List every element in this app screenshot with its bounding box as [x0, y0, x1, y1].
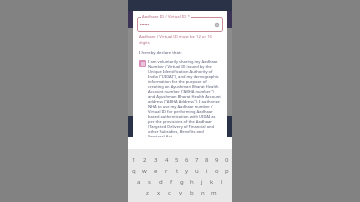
staticText: Aadhaar / Virtual ID must be 12 or 16 di…	[139, 34, 223, 46]
button[interactable]: i	[202, 165, 212, 176]
button[interactable]: e	[150, 165, 161, 176]
button[interactable]: y	[182, 165, 192, 176]
button[interactable]: a	[133, 176, 144, 187]
button[interactable]: Show password	[214, 22, 220, 28]
button[interactable]: o	[212, 165, 222, 176]
button[interactable]: ••••••	[137, 17, 223, 32]
button[interactable]: k	[207, 176, 217, 187]
staticText: o	[215, 167, 219, 175]
staticText: q	[132, 167, 136, 175]
staticText: 7	[195, 156, 199, 164]
button[interactable]: z	[142, 187, 153, 198]
staticText: d	[159, 178, 163, 186]
button[interactable]: r	[161, 165, 172, 176]
button[interactable]: 1	[128, 154, 139, 165]
button[interactable]: 6	[182, 154, 192, 165]
staticText: 0	[225, 156, 229, 164]
button[interactable]: h	[187, 176, 197, 187]
staticText: 1	[132, 156, 136, 164]
staticText: p	[225, 167, 229, 175]
button[interactable]: 4	[161, 154, 172, 165]
staticText: m	[211, 189, 217, 197]
staticText: g	[180, 178, 184, 186]
button[interactable]: m	[208, 187, 219, 198]
staticText: 2	[143, 156, 147, 164]
staticText: w	[142, 167, 147, 175]
button[interactable]: n	[197, 187, 208, 198]
staticText: I am voluntarily sharing my Aadhaar Numb…	[148, 59, 221, 137]
staticText: e	[154, 167, 158, 175]
staticText: i	[206, 167, 208, 175]
button[interactable]: j	[197, 176, 207, 187]
staticText: 8	[205, 156, 209, 164]
button[interactable]: u	[192, 165, 202, 176]
staticText: 6	[185, 156, 189, 164]
staticText: f	[170, 178, 173, 186]
button[interactable]: 8	[202, 154, 212, 165]
staticText: 4	[165, 156, 169, 164]
button[interactable]: 5	[172, 154, 182, 165]
button[interactable]: 3	[150, 154, 161, 165]
staticText: Aadhaar ID / Virtual ID *	[142, 14, 190, 20]
button[interactable]: f	[166, 176, 177, 187]
button[interactable]: s	[144, 176, 155, 187]
staticText: 5	[175, 156, 179, 164]
button[interactable]: 2	[139, 154, 150, 165]
staticText: r	[165, 167, 168, 175]
button[interactable]: b	[186, 187, 197, 198]
staticText: b	[190, 189, 194, 197]
button[interactable]: c	[164, 187, 175, 198]
button[interactable]: w	[139, 165, 150, 176]
button[interactable]: 7	[192, 154, 202, 165]
button[interactable]: p	[222, 165, 232, 176]
staticText: h	[190, 178, 194, 186]
staticText: c	[168, 189, 171, 197]
staticText: x	[157, 189, 161, 197]
button[interactable]: x	[153, 187, 164, 198]
staticText: 9	[215, 156, 219, 164]
staticText: t	[176, 167, 179, 175]
staticText: k	[210, 178, 214, 186]
button[interactable]: q	[128, 165, 139, 176]
staticText: n	[201, 189, 205, 197]
button[interactable]: l	[217, 176, 227, 187]
staticText: v	[179, 189, 183, 197]
button[interactable]: v	[175, 187, 186, 198]
button[interactable]: t	[172, 165, 182, 176]
staticText: z	[146, 189, 149, 197]
staticText: j	[201, 178, 203, 186]
staticText: s	[148, 178, 151, 186]
staticText: u	[195, 167, 199, 175]
button[interactable]: d	[155, 176, 166, 187]
button[interactable]: Consent checkbox	[139, 60, 146, 67]
staticText: a	[137, 178, 141, 186]
staticText: l	[221, 178, 223, 186]
staticText: I hereby declare that:	[139, 50, 182, 56]
staticText: 3	[154, 156, 158, 164]
staticText: y	[185, 167, 189, 175]
staticText: ••••••	[140, 22, 150, 27]
button[interactable]: 9	[212, 154, 222, 165]
button[interactable]: 0	[222, 154, 232, 165]
button[interactable]: g	[177, 176, 187, 187]
